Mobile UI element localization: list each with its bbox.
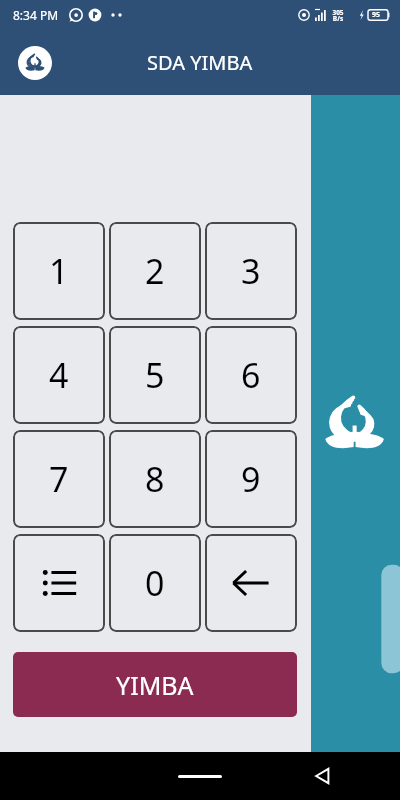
button[interactable]: 3 <box>205 222 297 320</box>
button[interactable]: 0 <box>109 534 201 632</box>
staticText: 1 <box>49 248 69 294</box>
button[interactable]: 5 <box>109 326 201 424</box>
staticText: 3 <box>241 248 261 294</box>
staticText: 7 <box>49 456 69 502</box>
button[interactable]: 9 <box>205 430 297 528</box>
button[interactable]: 8 <box>109 430 201 528</box>
button[interactable]: 2 <box>109 222 201 320</box>
staticText: 5 <box>145 352 165 398</box>
button[interactable]: Back <box>308 761 338 791</box>
staticText: 95 <box>372 10 381 20</box>
button[interactable]: App logo <box>18 46 52 80</box>
staticText: 0 <box>145 560 165 606</box>
button[interactable]: 7 <box>13 430 105 528</box>
staticText: YIMBA <box>116 668 194 702</box>
staticText: 6 <box>241 352 261 398</box>
button[interactable]: YIMBA <box>13 652 297 717</box>
staticText: 8 <box>145 456 165 502</box>
staticText: 8:34 PM <box>13 7 59 23</box>
button[interactable]: 6 <box>205 326 297 424</box>
button[interactable]: Home <box>168 763 232 789</box>
button[interactable]: Backspace <box>205 534 297 632</box>
button[interactable]: Song list <box>13 534 105 632</box>
staticText: 2 <box>145 248 165 294</box>
staticText: SDA YIMBA <box>147 49 253 76</box>
staticText: 305 B/s <box>332 8 344 23</box>
button[interactable]: 1 <box>13 222 105 320</box>
button[interactable]: 4 <box>13 326 105 424</box>
staticText: 9 <box>241 456 261 502</box>
staticText: 4 <box>49 352 69 398</box>
